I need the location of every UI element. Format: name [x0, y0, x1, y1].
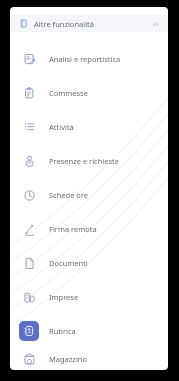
staticText: Commesse	[49, 88, 88, 98]
button[interactable]: Documenti	[10, 246, 168, 280]
button[interactable]: Firma remota	[10, 212, 168, 246]
button[interactable]: Imprese	[10, 280, 168, 314]
button[interactable]: Schede ore	[10, 178, 168, 212]
button[interactable]: Collapse section	[148, 17, 162, 31]
staticText: Altre funzionalità	[34, 19, 95, 29]
staticText: Schede ore	[49, 190, 89, 200]
button[interactable]: Commesse	[10, 76, 168, 110]
staticText: Firma remota	[49, 224, 97, 234]
button[interactable]: Rubrica	[10, 314, 168, 348]
button[interactable]: Presenze e richieste	[10, 144, 168, 178]
staticText: Magazzino	[49, 354, 87, 364]
staticText: Attività	[49, 122, 74, 132]
button[interactable]: Analisi e reportistica	[10, 42, 168, 76]
button[interactable]: Attività	[10, 110, 168, 144]
button[interactable]: Altre funzionalità	[10, 15, 168, 32]
staticText: Analisi e reportistica	[49, 54, 121, 64]
staticText: Documenti	[49, 258, 88, 268]
button[interactable]: Magazzino	[10, 348, 168, 370]
staticText: Rubrica	[49, 326, 76, 336]
staticText: Presenze e richieste	[49, 156, 120, 166]
staticText: Imprese	[49, 292, 79, 302]
